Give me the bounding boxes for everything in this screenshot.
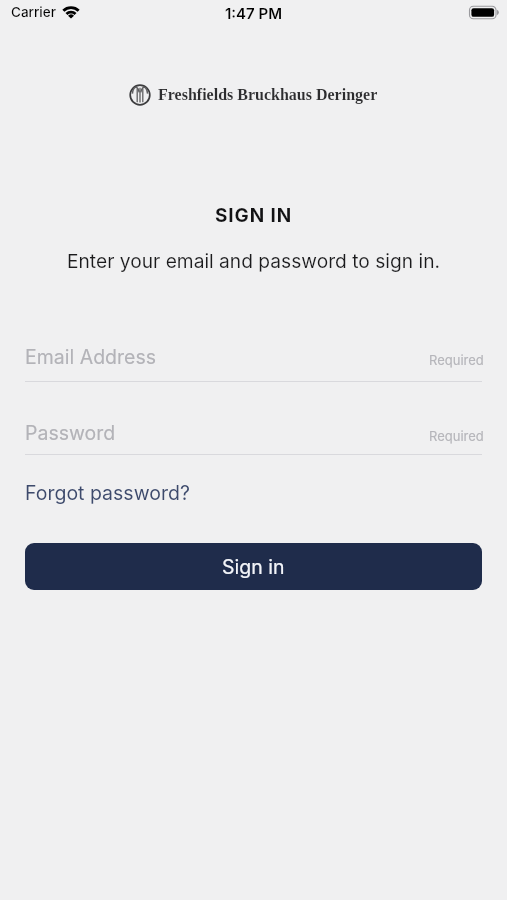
- staticText: Email Address: [25, 345, 156, 369]
- staticText: SIGN IN: [0, 204, 507, 227]
- staticText: Carrier: [11, 4, 56, 20]
- staticText: Forgot password?: [25, 481, 190, 505]
- button[interactable]: Forgot password?: [25, 481, 190, 505]
- staticText: Required: [429, 428, 484, 444]
- staticText: Password: [25, 421, 116, 445]
- staticText: Enter your email and password to sign in…: [0, 249, 507, 272]
- button[interactable]: Email Address: [25, 345, 482, 383]
- staticText: Sign in: [222, 555, 285, 579]
- button[interactable]: Sign in: [25, 543, 482, 590]
- staticText: 1:47 PM: [0, 4, 507, 22]
- staticText: Required: [429, 352, 484, 368]
- staticText: Freshfields Bruckhaus Deringer: [158, 86, 378, 104]
- button[interactable]: Password: [25, 421, 482, 459]
